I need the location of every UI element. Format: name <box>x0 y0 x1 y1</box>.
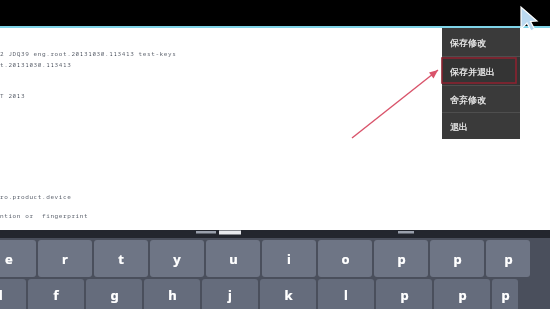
button[interactable]: 保存并退出 <box>442 57 520 85</box>
button[interactable]: p <box>374 240 428 277</box>
staticText: T 2013 <box>0 92 26 100</box>
staticText: r <box>62 250 68 268</box>
button[interactable]: p <box>376 279 432 309</box>
staticText: p <box>504 250 513 268</box>
staticText: d <box>0 286 3 304</box>
staticText: 舍弃修改 <box>450 94 486 105</box>
staticText: ro.product.device <box>0 193 72 201</box>
staticText: 退出 <box>450 121 468 132</box>
button[interactable]: t <box>94 240 148 277</box>
staticText: t.20131030.113413 <box>0 61 72 69</box>
button[interactable]: d <box>0 279 26 309</box>
staticText: 保存并退出 <box>450 66 495 77</box>
staticText: f <box>53 286 59 304</box>
button[interactable]: e <box>0 240 36 277</box>
button[interactable]: h <box>144 279 200 309</box>
staticText: p <box>501 286 510 304</box>
button[interactable]: o <box>318 240 372 277</box>
button[interactable]: 舍弃修改 <box>442 86 520 112</box>
button[interactable]: p <box>486 240 530 277</box>
staticText: u <box>229 250 238 268</box>
button[interactable]: f <box>28 279 84 309</box>
staticText: y <box>173 250 181 268</box>
button[interactable]: 退出 <box>442 113 520 139</box>
button[interactable]: y <box>150 240 204 277</box>
button[interactable]: p <box>492 279 518 309</box>
staticText: h <box>168 286 177 304</box>
button[interactable]: u <box>206 240 260 277</box>
staticText: p <box>453 250 462 268</box>
staticText: g <box>110 286 119 304</box>
button[interactable]: i <box>262 240 316 277</box>
staticText: ntion or fingerprint <box>0 212 89 220</box>
staticText: p <box>458 286 467 304</box>
staticText: p <box>400 286 409 304</box>
staticText: i <box>287 250 291 268</box>
staticText: p <box>397 250 406 268</box>
button[interactable]: j <box>202 279 258 309</box>
button[interactable]: g <box>86 279 142 309</box>
staticText: e <box>5 250 13 268</box>
staticText: k <box>284 286 293 304</box>
button[interactable]: l <box>318 279 374 309</box>
button[interactable]: 保存修改 <box>442 28 520 56</box>
staticText: 2 JDQ39 eng.root.20131030.113413 test-ke… <box>0 50 177 58</box>
staticText: t <box>118 250 124 268</box>
staticText: 保存修改 <box>450 37 486 48</box>
button[interactable]: p <box>434 279 490 309</box>
staticText: j <box>228 286 232 304</box>
button[interactable]: p <box>430 240 484 277</box>
other: Pointer <box>519 6 537 32</box>
staticText: l <box>344 286 348 304</box>
staticText: o <box>341 250 350 268</box>
button[interactable]: r <box>38 240 92 277</box>
button[interactable]: k <box>260 279 316 309</box>
